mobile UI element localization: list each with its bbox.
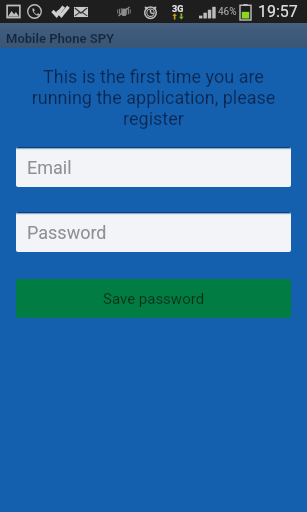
staticText: 19:57 xyxy=(258,2,298,21)
button[interactable]: Password xyxy=(16,212,291,252)
staticText: Save password xyxy=(103,290,205,308)
button[interactable]: Save password xyxy=(16,279,291,318)
button[interactable]: Email xyxy=(16,147,291,187)
staticText: 46% xyxy=(218,6,237,18)
staticText: 3G xyxy=(172,4,184,15)
staticText: Email xyxy=(27,157,72,178)
staticText: Mobile Phone SPY xyxy=(6,31,115,46)
staticText: Password xyxy=(27,222,107,243)
staticText: This is the first time you are running t… xyxy=(26,66,281,129)
